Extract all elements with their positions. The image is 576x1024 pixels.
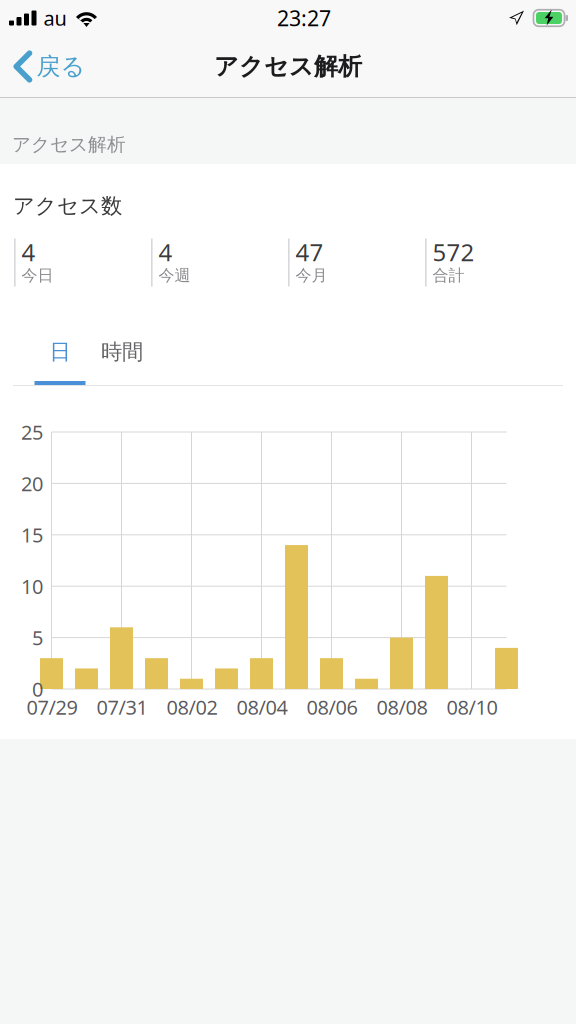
staticText: 今週 bbox=[159, 266, 191, 285]
button[interactable]: 日 bbox=[25, 336, 95, 385]
staticText: アクセス解析 bbox=[214, 52, 362, 81]
staticText: 07/31 bbox=[96, 694, 147, 720]
staticText: 戻る bbox=[36, 52, 85, 81]
staticText: 0 bbox=[32, 676, 43, 702]
staticText: 25 bbox=[21, 419, 43, 445]
staticText: 08/04 bbox=[236, 694, 287, 720]
staticText: 今日 bbox=[22, 266, 54, 285]
button[interactable]: 時間 bbox=[95, 336, 149, 385]
staticText: 07/29 bbox=[26, 694, 77, 720]
staticText: 20 bbox=[21, 470, 43, 497]
staticText: 10 bbox=[21, 573, 43, 599]
staticText: 15 bbox=[21, 521, 43, 548]
staticText: 合計 bbox=[433, 266, 465, 285]
button[interactable]: 戻る bbox=[0, 36, 95, 97]
staticText: 日 bbox=[49, 339, 70, 365]
staticText: 4 bbox=[159, 236, 173, 268]
staticText: 572 bbox=[433, 236, 475, 268]
staticText: 時間 bbox=[101, 339, 143, 365]
staticText: 23:27 bbox=[277, 4, 331, 32]
staticText: アクセス数 bbox=[13, 193, 122, 219]
staticText: au bbox=[43, 5, 66, 31]
staticText: 08/06 bbox=[306, 694, 357, 720]
staticText: 08/02 bbox=[166, 694, 217, 720]
staticText: 08/10 bbox=[446, 694, 497, 720]
staticText: 4 bbox=[22, 236, 36, 268]
staticText: 5 bbox=[32, 624, 43, 651]
staticText: 今月 bbox=[296, 266, 328, 285]
staticText: 08/08 bbox=[376, 694, 427, 720]
staticText: 47 bbox=[296, 236, 324, 268]
staticText: アクセス解析 bbox=[12, 133, 126, 156]
